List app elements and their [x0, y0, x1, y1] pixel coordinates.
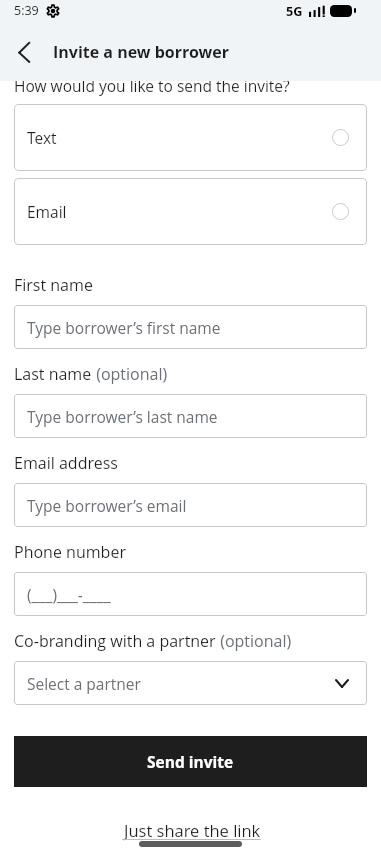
staticText: First name	[14, 274, 93, 296]
button[interactable]: Text	[14, 104, 367, 171]
button[interactable]: Send invite	[14, 736, 367, 787]
staticText: Email address	[14, 452, 118, 474]
staticText: Type borrower’s first name	[27, 317, 221, 338]
staticText: 5:39	[14, 2, 39, 19]
staticText: 5G	[286, 2, 303, 19]
button[interactable]: Select a partner	[14, 661, 367, 705]
button[interactable]: (___)___-____	[14, 572, 367, 616]
staticText: (optional)	[216, 630, 292, 652]
staticText: Email	[27, 201, 67, 222]
staticText: (optional)	[92, 363, 168, 385]
staticText: Phone number	[14, 541, 126, 563]
staticText: Last name	[14, 363, 92, 385]
button[interactable]: Back	[4, 30, 48, 74]
staticText: Select a partner	[27, 673, 141, 694]
staticText: Co-branding with a partner	[14, 630, 216, 652]
staticText: How would you like to send the invite?	[14, 75, 290, 96]
staticText: Text	[27, 127, 57, 148]
staticText: Type borrower’s email	[27, 495, 187, 516]
staticText: Send invite	[147, 751, 234, 772]
button[interactable]: Email	[14, 178, 367, 245]
button[interactable]: Type borrower’s email	[14, 483, 367, 527]
button[interactable]: Just share the link	[118, 817, 263, 843]
button[interactable]: Type borrower’s first name	[14, 305, 367, 349]
staticText: (___)___-____	[27, 584, 111, 605]
staticText: Just share the link	[124, 819, 261, 841]
staticText: Invite a new borrower	[53, 41, 229, 63]
button[interactable]: Type borrower’s last name	[14, 394, 367, 438]
staticText: Type borrower’s last name	[27, 406, 218, 427]
